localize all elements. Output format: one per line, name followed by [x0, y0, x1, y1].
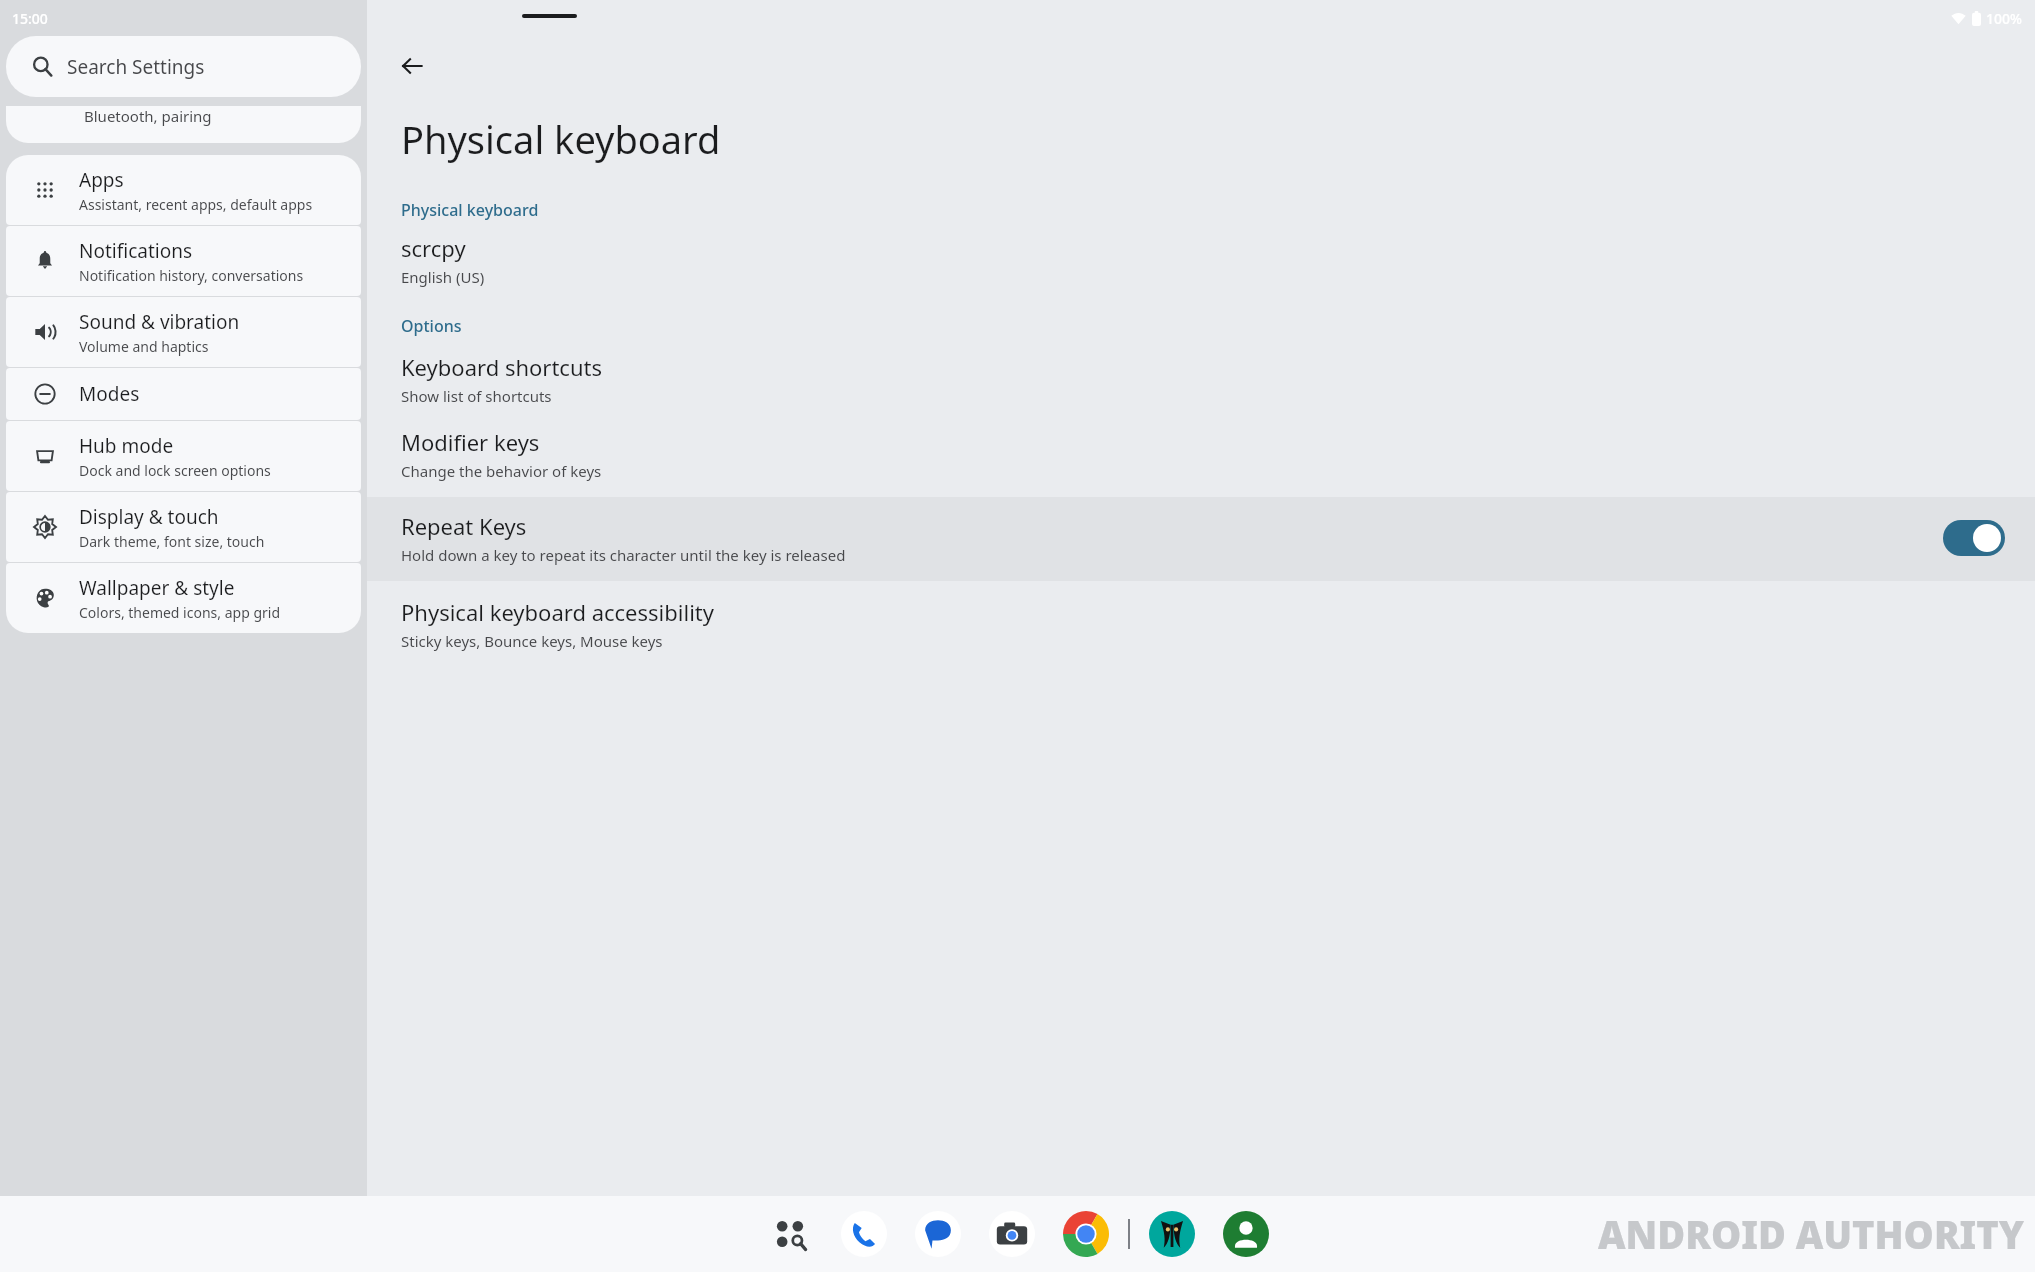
- staticText: Modifier keys: [401, 427, 540, 457]
- button[interactable]: Camera: [986, 1208, 1038, 1260]
- button[interactable]: Wallpaper & style: [6, 563, 361, 633]
- button[interactable]: Modifier keys: [367, 425, 2035, 483]
- staticText: Search Settings: [67, 54, 205, 80]
- button[interactable]: Physical keyboard accessibility: [367, 595, 2035, 653]
- staticText: Repeat Keys: [401, 511, 527, 541]
- staticText: Hub mode: [79, 433, 174, 459]
- button[interactable]: Apps: [6, 155, 361, 225]
- staticText: Apps: [79, 167, 124, 193]
- staticText: Change the behavior of keys: [401, 461, 602, 481]
- staticText: Options: [401, 315, 462, 337]
- staticText: Keyboard shortcuts: [401, 352, 602, 382]
- staticText: Bluetooth, pairing: [84, 106, 212, 126]
- button[interactable]: Keyboard shortcuts: [367, 350, 2035, 408]
- button[interactable]: Phone: [838, 1208, 890, 1260]
- staticText: Dock and lock screen options: [79, 461, 271, 480]
- button[interactable]: Search Settings: [6, 36, 361, 97]
- button[interactable]: Contacts: [1220, 1208, 1272, 1260]
- button[interactable]: Magisk: [1146, 1208, 1198, 1260]
- staticText: Assistant, recent apps, default apps: [79, 195, 313, 214]
- staticText: Physical keyboard accessibility: [401, 597, 714, 627]
- staticText: Show list of shortcuts: [401, 386, 552, 406]
- button[interactable]: scrcpy: [367, 231, 2035, 289]
- staticText: Colors, themed icons, app grid: [79, 603, 280, 622]
- button[interactable]: Messages: [912, 1208, 964, 1260]
- button[interactable]: Display & touch: [6, 492, 361, 562]
- button[interactable]: Repeat Keys: [367, 497, 2035, 581]
- button[interactable]: Repeat Keys toggle, on: [1943, 520, 2005, 556]
- staticText: 15:00: [12, 9, 48, 28]
- staticText: Sound & vibration: [79, 309, 240, 335]
- staticText: Volume and haptics: [79, 337, 209, 356]
- button[interactable]: Notifications: [6, 226, 361, 296]
- staticText: Physical keyboard: [401, 199, 539, 221]
- staticText: 100%: [1986, 9, 2022, 28]
- staticText: English (US): [401, 267, 485, 287]
- staticText: scrcpy: [401, 233, 466, 263]
- button[interactable]: Bluetooth, pairing: [6, 106, 361, 143]
- staticText: Notifications: [79, 238, 193, 264]
- staticText: Wallpaper & style: [79, 575, 235, 601]
- staticText: Physical keyboard: [401, 113, 721, 165]
- button[interactable]: Modes: [6, 368, 361, 420]
- button[interactable]: Back: [389, 43, 435, 89]
- staticText: Notification history, conversations: [79, 266, 304, 285]
- staticText: ANDROID AUTHORITY: [1598, 1208, 2025, 1260]
- button[interactable]: All apps: [764, 1208, 816, 1260]
- staticText: Dark theme, font size, touch: [79, 532, 265, 551]
- button[interactable]: Chrome: [1060, 1208, 1112, 1260]
- staticText: Sticky keys, Bounce keys, Mouse keys: [401, 631, 663, 651]
- staticText: Display & touch: [79, 504, 219, 530]
- staticText: Modes: [79, 381, 140, 407]
- button[interactable]: Sound & vibration: [6, 297, 361, 367]
- button[interactable]: Hub mode: [6, 421, 361, 491]
- staticText: Hold down a key to repeat its character …: [401, 545, 846, 565]
